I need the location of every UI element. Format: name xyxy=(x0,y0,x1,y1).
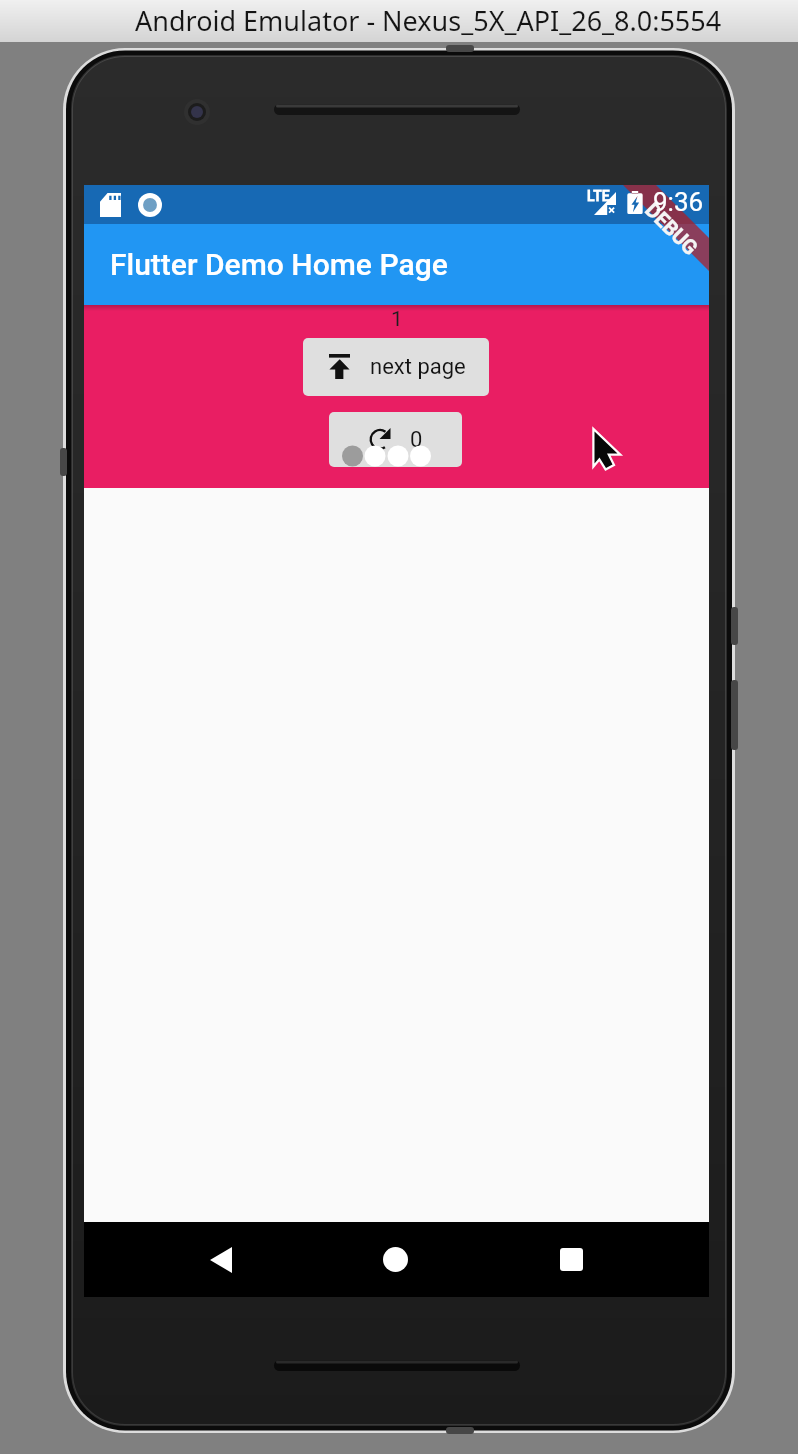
staticText: 0 xyxy=(410,427,423,453)
button[interactable]: Home xyxy=(340,1222,450,1297)
button[interactable]: Back xyxy=(166,1222,276,1297)
button[interactable]: 0 xyxy=(329,412,462,467)
button[interactable]: Recent apps xyxy=(516,1222,626,1297)
staticText: DEBUG xyxy=(641,198,703,259)
staticText: Android Emulator - Nexus_5X_API_26_8.0:5… xyxy=(135,2,722,39)
button[interactable]: next page xyxy=(303,338,489,396)
staticText: 9:36 xyxy=(653,187,704,217)
staticText: Flutter Demo Home Page xyxy=(110,247,448,282)
staticText: LTE xyxy=(587,188,610,204)
staticText: next page xyxy=(370,354,466,380)
staticText: 1 xyxy=(391,307,403,332)
